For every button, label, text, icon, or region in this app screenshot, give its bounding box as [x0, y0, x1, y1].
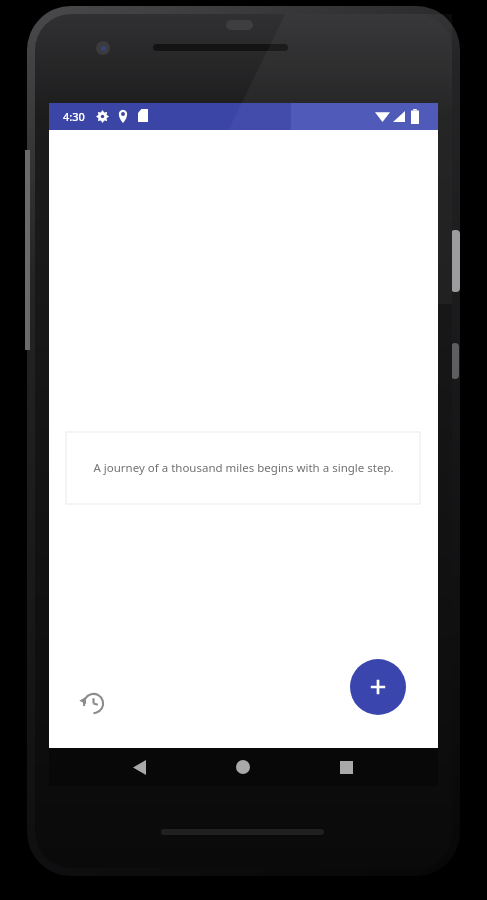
button[interactable]: History — [72, 682, 112, 722]
button[interactable]: Back — [115, 748, 163, 786]
staticText: 4:30 — [63, 109, 85, 124]
button[interactable]: Recents — [322, 748, 370, 786]
button[interactable]: Home — [219, 748, 267, 786]
button[interactable]: Add — [350, 659, 406, 715]
button[interactable]: A journey of a thousand miles begins wit… — [66, 432, 420, 504]
staticText: A journey of a thousand miles begins wit… — [93, 460, 394, 476]
